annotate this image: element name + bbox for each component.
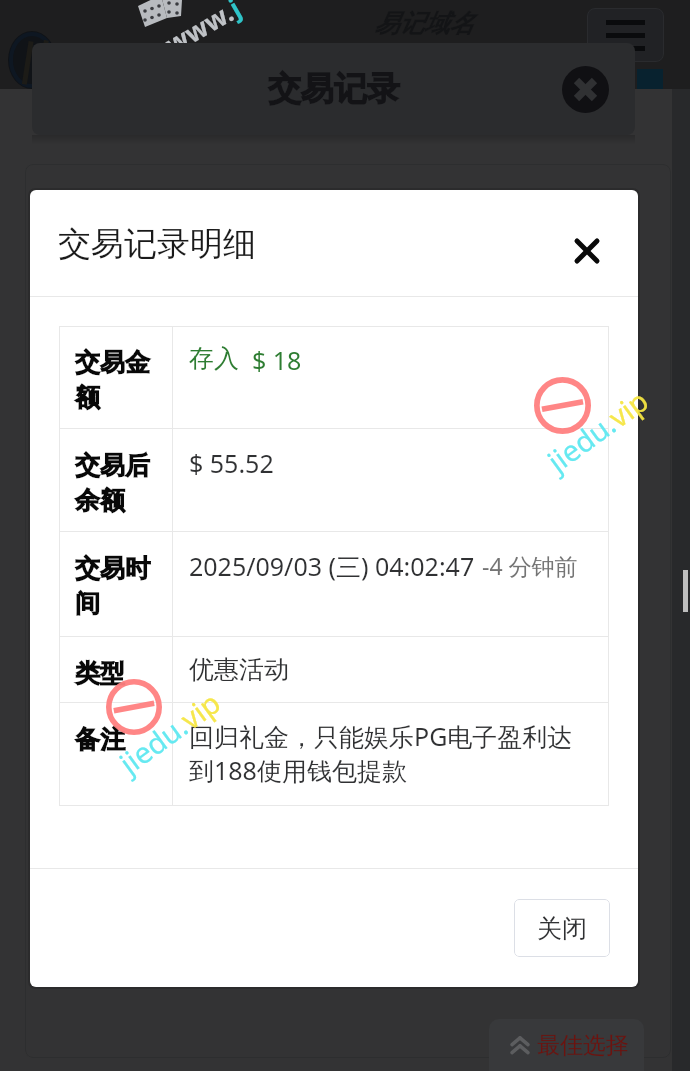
staticText: 2025/09/03 (三) 04:02:47 bbox=[189, 549, 475, 583]
button[interactable]: Close dialog bbox=[569, 233, 605, 269]
staticText: 交易记录 bbox=[268, 68, 400, 110]
staticText: 回归礼金，只能娱乐PG电子盈利达到188使用钱包提款 bbox=[189, 720, 587, 788]
staticText: -4 分钟前 bbox=[482, 550, 578, 581]
button[interactable]: 关闭 bbox=[514, 899, 610, 957]
staticText: jiedu. bbox=[111, 706, 195, 782]
staticText: $ 55.52 bbox=[189, 446, 274, 480]
button[interactable]: Menu bbox=[587, 8, 664, 62]
staticText: 备注 bbox=[75, 722, 125, 757]
staticText: j bbox=[222, 0, 247, 24]
staticText: jiedu. bbox=[539, 404, 623, 480]
staticText: vip bbox=[172, 682, 228, 738]
staticText: 最佳选择 bbox=[537, 1031, 629, 1060]
button[interactable]: Close bbox=[562, 66, 609, 113]
staticText: 存入 bbox=[189, 343, 239, 374]
staticText: 交易金额 bbox=[75, 345, 164, 415]
staticText: 交易记录明细 bbox=[58, 223, 256, 265]
staticText: 交易时间 bbox=[75, 551, 164, 621]
staticText: 交易后余额 bbox=[75, 448, 164, 518]
staticText: vip bbox=[600, 380, 656, 436]
staticText: 关闭 bbox=[537, 913, 587, 944]
staticText: www. bbox=[158, 0, 240, 61]
staticText: $ 18 bbox=[252, 343, 302, 377]
staticText: 易记域名 bbox=[374, 8, 474, 39]
staticText: 优惠活动 bbox=[189, 654, 289, 685]
staticText: 类型 bbox=[75, 656, 125, 691]
button[interactable]: 最佳选择 bbox=[489, 1019, 644, 1071]
